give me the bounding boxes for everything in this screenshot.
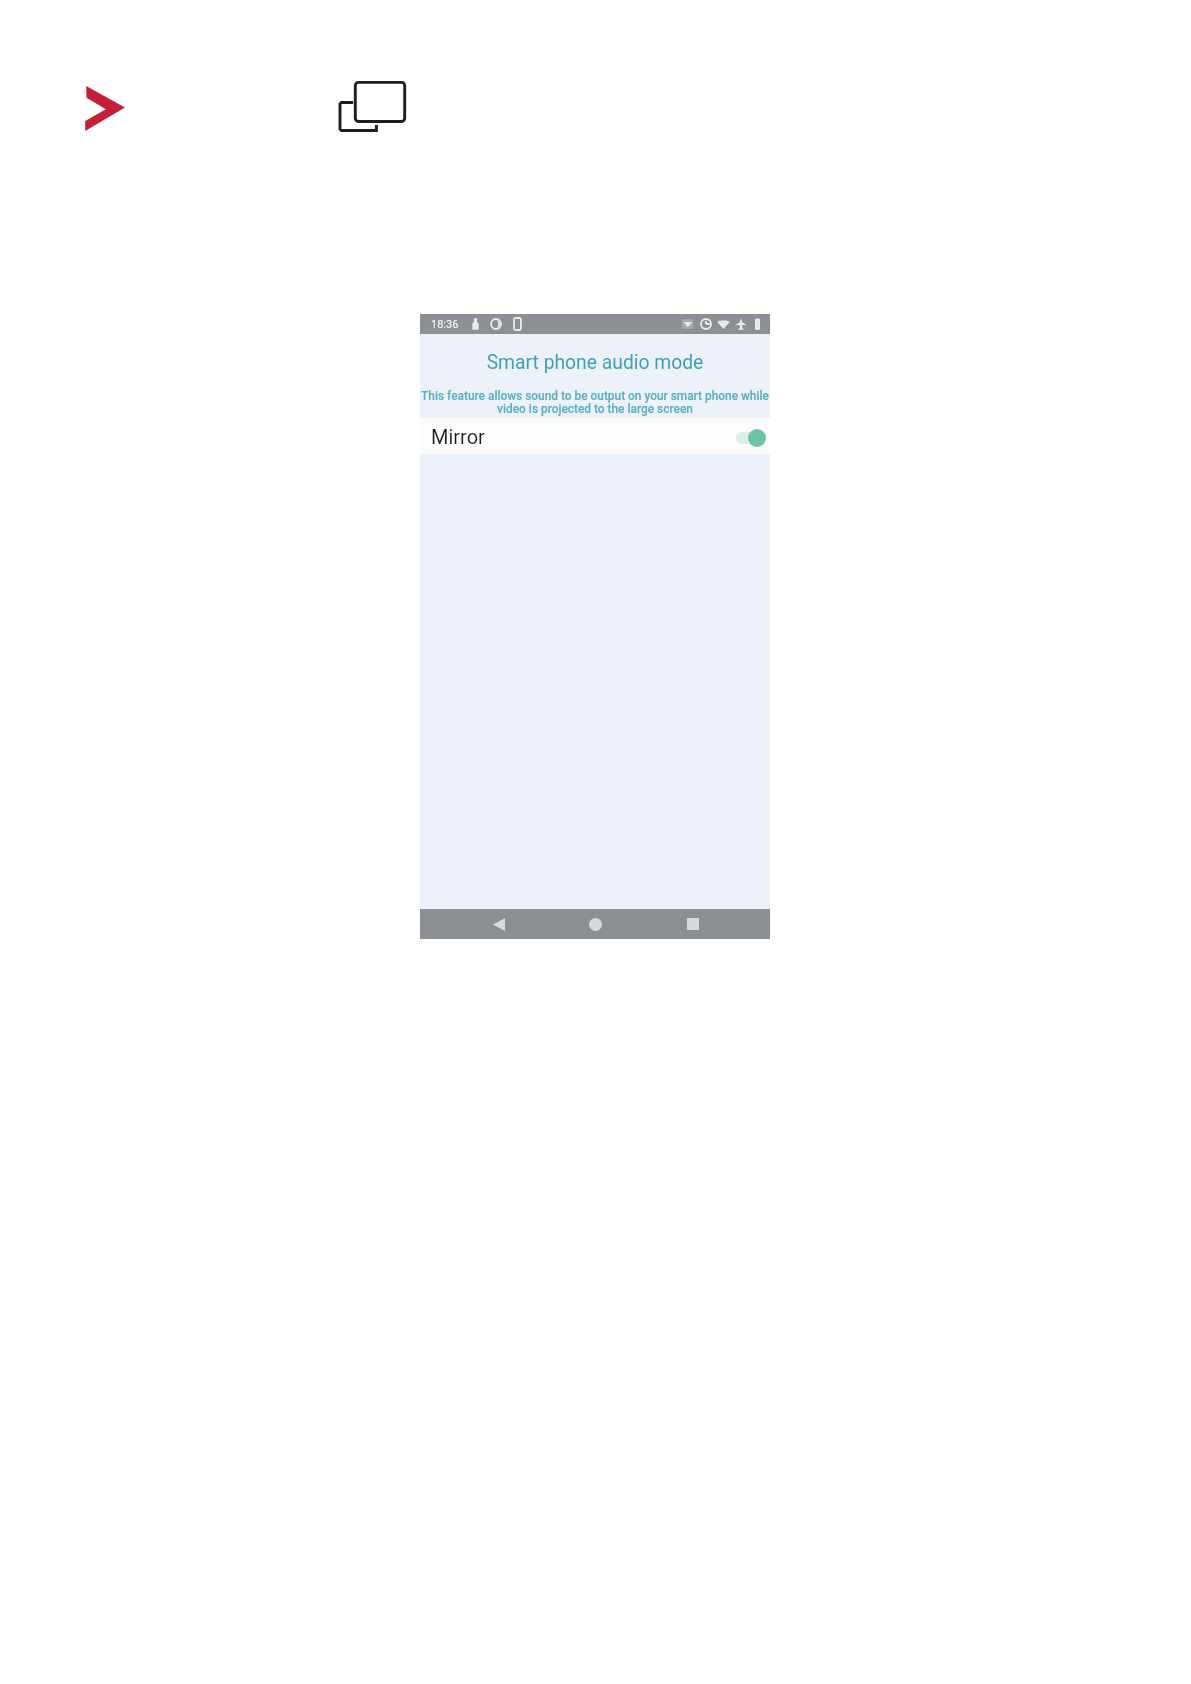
other: Screen mirroring	[338, 80, 406, 132]
staticText: This feature allows sound to be output o…	[420, 389, 770, 416]
button[interactable]: Mirror toggle, on	[735, 425, 766, 451]
staticText: 18:36	[431, 318, 459, 331]
button[interactable]: Recent apps	[662, 909, 723, 939]
staticText: Smart phone audio mode	[420, 351, 770, 374]
button[interactable]: Home	[565, 909, 626, 939]
staticText: Mirror	[431, 425, 485, 448]
button[interactable]: Mirror	[420, 418, 770, 454]
other: Next step	[85, 86, 125, 131]
button[interactable]: Back	[468, 909, 529, 939]
